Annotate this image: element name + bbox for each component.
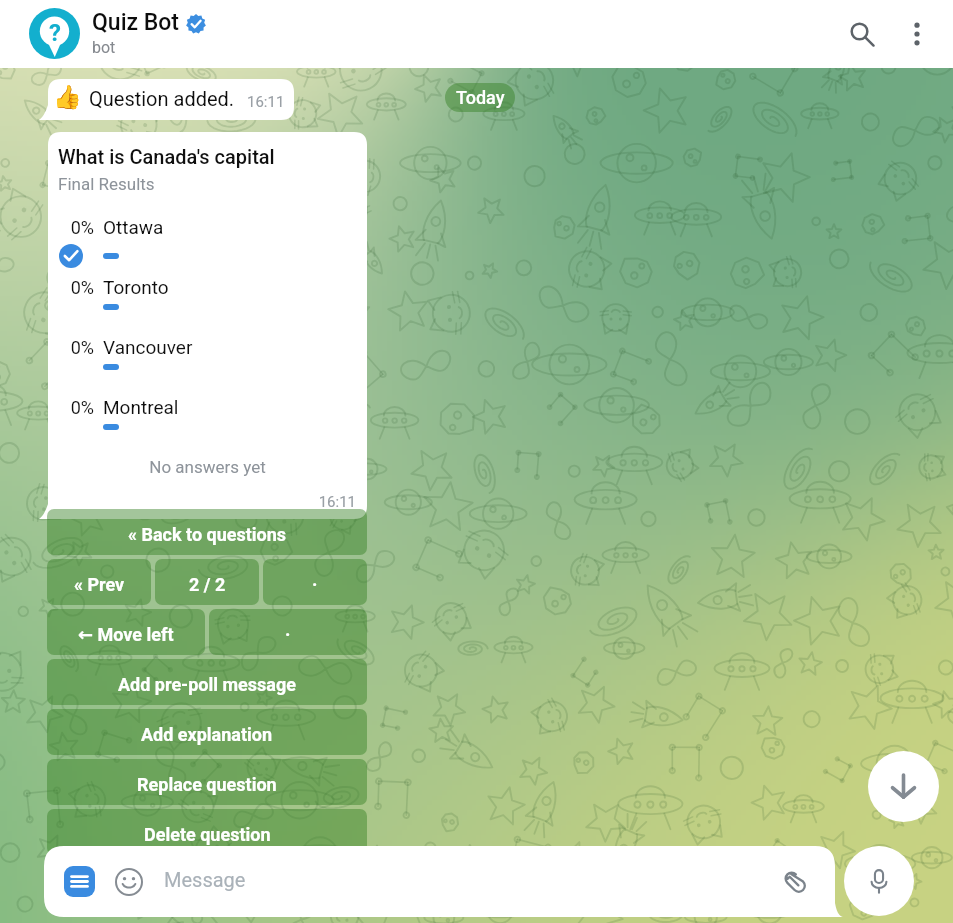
button[interactable]: 0% bbox=[48, 276, 367, 336]
staticText: bot bbox=[92, 38, 116, 57]
staticText: What is Canada's capital bbox=[58, 145, 275, 168]
staticText: · bbox=[312, 574, 318, 595]
button[interactable]: · bbox=[209, 609, 367, 655]
staticText: 0% bbox=[48, 217, 94, 238]
button[interactable]: ? bbox=[29, 8, 80, 59]
staticText: Toronto bbox=[103, 276, 169, 298]
staticText: ? bbox=[49, 19, 61, 47]
staticText: 16:11 bbox=[247, 93, 285, 111]
staticText: Message bbox=[164, 868, 246, 891]
button[interactable]: More options bbox=[890, 7, 944, 61]
button[interactable]: Emoji bbox=[114, 867, 144, 897]
staticText: 0% bbox=[48, 397, 94, 418]
button[interactable]: Replace question bbox=[47, 759, 367, 805]
button[interactable]: Today bbox=[445, 83, 515, 112]
staticText: Vancouver bbox=[103, 336, 193, 358]
button[interactable]: Delete question bbox=[47, 809, 367, 855]
button[interactable]: ← Move left bbox=[47, 609, 205, 655]
staticText: 0% bbox=[48, 337, 94, 358]
staticText: 16:11 bbox=[48, 493, 356, 511]
staticText: Montreal bbox=[103, 396, 179, 418]
button[interactable]: Attach bbox=[777, 864, 813, 900]
staticText: Add pre-poll message bbox=[118, 674, 296, 695]
staticText: Final Results bbox=[58, 174, 155, 194]
staticText: Question added. bbox=[89, 87, 235, 110]
staticText: ← Move left bbox=[78, 624, 174, 645]
button[interactable]: What is Canada's capital bbox=[48, 132, 367, 519]
staticText: Today bbox=[456, 87, 505, 108]
button[interactable]: « Prev bbox=[47, 559, 151, 605]
button[interactable]: Record voice message bbox=[844, 846, 914, 916]
button[interactable]: 0% bbox=[48, 336, 367, 396]
button[interactable]: 0% bbox=[48, 216, 367, 276]
button[interactable]: 2 / 2 bbox=[155, 559, 259, 605]
button[interactable]: Add explanation bbox=[47, 709, 367, 755]
button[interactable]: « Back to questions bbox=[47, 509, 367, 555]
button[interactable]: Scroll to bottom bbox=[868, 751, 939, 822]
staticText: No answers yet bbox=[48, 457, 367, 477]
button[interactable]: Bot commands bbox=[64, 866, 95, 897]
staticText: 👍 bbox=[53, 84, 82, 111]
staticText: « Back to questions bbox=[128, 524, 287, 545]
staticText: Replace question bbox=[137, 774, 277, 795]
button[interactable]: 👍 bbox=[48, 79, 294, 120]
staticText: Add explanation bbox=[141, 724, 273, 745]
staticText: Ottawa bbox=[103, 216, 164, 238]
button[interactable]: Search bbox=[836, 7, 890, 61]
staticText: Delete question bbox=[144, 824, 271, 845]
button[interactable]: · bbox=[263, 559, 367, 605]
staticText: 0% bbox=[48, 277, 94, 298]
staticText: · bbox=[285, 624, 291, 645]
staticText: 2 / 2 bbox=[189, 574, 226, 595]
button[interactable]: Add pre-poll message bbox=[47, 659, 367, 705]
staticText: « Prev bbox=[74, 574, 125, 595]
staticText: Quiz Bot bbox=[92, 9, 180, 36]
button[interactable]: 0% bbox=[48, 396, 367, 456]
